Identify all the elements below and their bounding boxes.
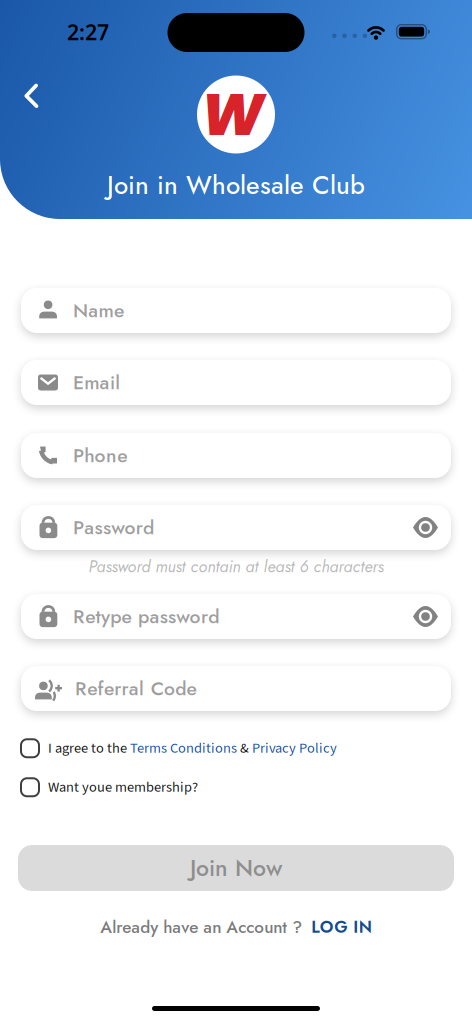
staticText: Want youe membership? [48,777,198,797]
staticText: 2:27 [67,18,109,46]
button[interactable]: Email [21,360,451,405]
staticText: Privacy Policy [252,738,337,758]
button[interactable]: Retype password [21,594,451,639]
button[interactable]: Name [21,288,451,333]
staticText: Join Now [190,851,282,885]
staticText: Referral Code [75,674,197,702]
staticText: Password must contain at least 6 charact… [88,555,383,578]
button[interactable]: Password [21,505,451,550]
button[interactable]: Join Now [18,845,454,891]
button[interactable]: Terms Conditions [130,738,237,758]
staticText: & [237,738,252,758]
button[interactable]: Referral Code [21,666,451,711]
staticText: Name [73,296,124,324]
staticText: Phone [73,441,127,469]
button[interactable]: LOG IN [311,915,372,939]
staticText: Join in Wholesale Club [107,166,365,203]
staticText: Already have an Account ? [100,915,302,939]
staticText: LOG IN [311,915,372,939]
button[interactable]: Show password [413,519,451,535]
staticText: Password [73,513,154,541]
button[interactable]: I agree to the Terms Conditions and Priv… [20,738,40,758]
button[interactable]: Back [11,71,53,120]
button[interactable]: Privacy Policy [252,738,337,758]
staticText: I agree to the [48,738,130,758]
staticText: Terms Conditions [130,738,237,758]
staticText: W [201,73,264,155]
button[interactable]: Want youe membership [20,777,40,797]
staticText: Email [73,368,120,396]
button[interactable]: Phone [21,433,451,478]
button[interactable]: Show password [413,608,451,624]
staticText: Retype password [73,602,219,630]
